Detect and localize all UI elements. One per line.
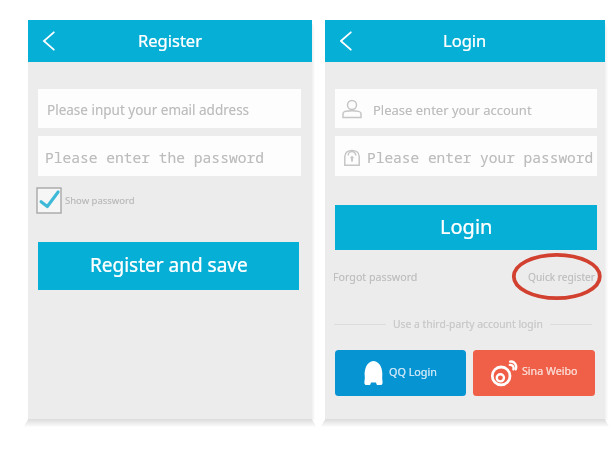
- button[interactable]: Back: [331, 26, 361, 56]
- staticText: Login: [440, 213, 493, 240]
- button[interactable]: Quick register: [528, 270, 596, 284]
- staticText: Login: [443, 29, 487, 51]
- staticText: Register: [138, 29, 202, 51]
- button[interactable]: Sina Weibo: [473, 350, 595, 396]
- button[interactable]: QQ Login: [335, 350, 466, 396]
- button[interactable]: Login: [335, 205, 597, 250]
- staticText: Register and save: [90, 252, 248, 278]
- staticText: Please input your email address: [47, 101, 250, 119]
- staticText: Sina Weibo: [522, 364, 578, 379]
- staticText: Please enter your password: [367, 147, 594, 167]
- staticText: Please enter your account: [373, 101, 532, 119]
- button[interactable]: Show password: [37, 188, 135, 213]
- button[interactable]: Please input your email address: [38, 89, 301, 128]
- staticText: Use a third-party account login: [393, 317, 543, 331]
- button[interactable]: Please enter the password: [38, 136, 301, 176]
- button[interactable]: Please enter your password: [335, 136, 597, 176]
- staticText: QQ Login: [389, 364, 437, 379]
- staticText: Show password: [65, 194, 135, 207]
- staticText: Please enter the password: [45, 147, 264, 167]
- button[interactable]: Forgot password: [333, 270, 418, 285]
- button[interactable]: Back: [34, 26, 64, 56]
- button[interactable]: Register and save: [38, 242, 299, 290]
- button[interactable]: Please enter your account: [335, 89, 597, 128]
